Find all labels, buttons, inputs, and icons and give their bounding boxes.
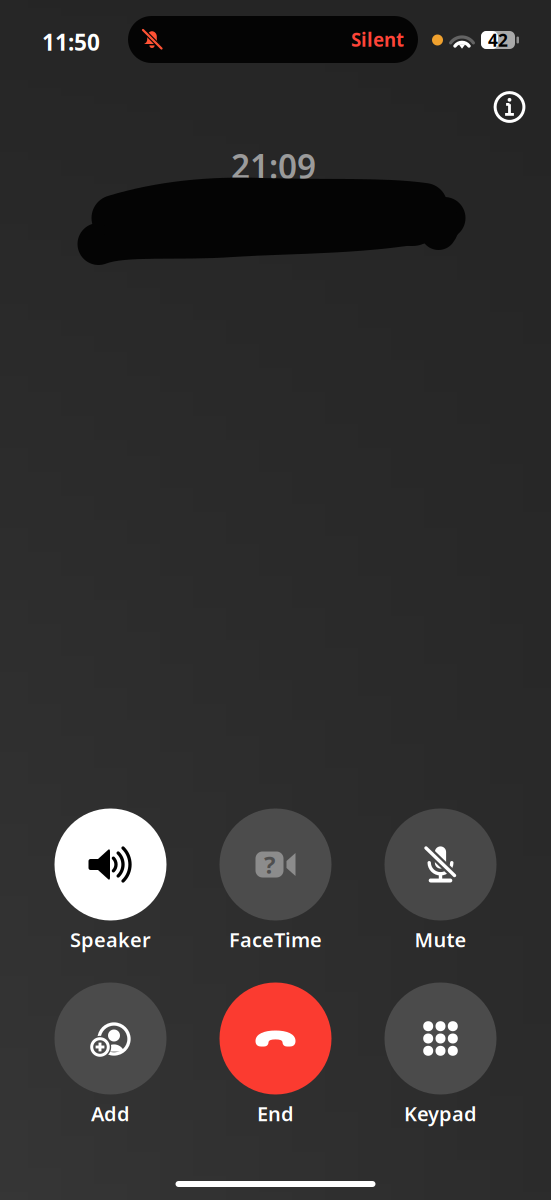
button[interactable]: Call details [487,85,531,129]
staticText: 42 [488,28,508,51]
staticText: ? [264,849,275,880]
staticText: Silent [351,27,404,52]
button[interactable]: End [193,982,358,1123]
staticText: 21:09 [231,144,316,188]
staticText: 11:50 [42,27,100,57]
button[interactable]: ? [193,808,358,949]
button[interactable]: Keypad [358,982,523,1123]
staticText: Add [91,1100,130,1127]
staticText: End [257,1100,294,1127]
staticText: Speaker [70,926,151,953]
button[interactable]: Speaker [28,808,193,949]
staticText: Mute [414,926,466,953]
button[interactable]: Add [28,982,193,1123]
button[interactable]: Mute [358,808,523,949]
staticText: FaceTime [229,926,322,953]
staticText: Keypad [404,1100,477,1127]
